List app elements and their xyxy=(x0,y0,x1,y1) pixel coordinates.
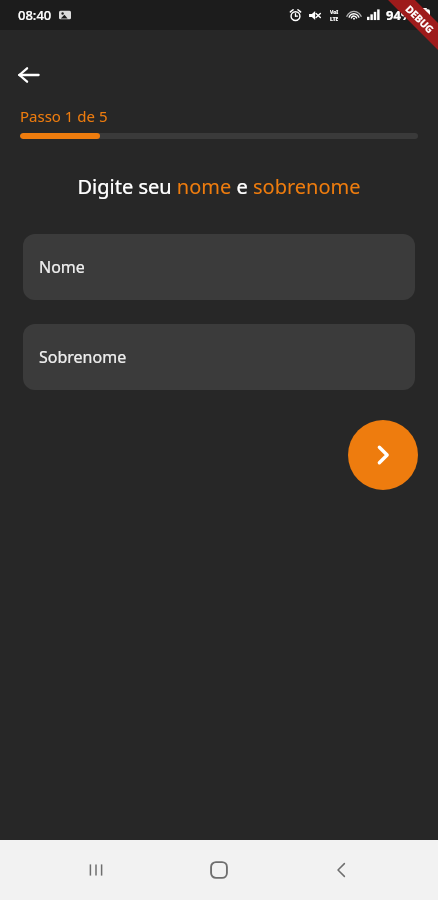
button[interactable]: Sobrenome xyxy=(23,324,415,390)
staticText: Sobrenome xyxy=(39,346,127,368)
staticText: Passo 1 de 5 xyxy=(20,106,108,126)
button[interactable]: Back xyxy=(6,52,52,98)
staticText: Digite seu nome e sobrenome xyxy=(16,173,422,200)
button[interactable]: Nome xyxy=(23,234,415,300)
staticText: LTE xyxy=(330,16,339,22)
button[interactable]: Home xyxy=(192,843,246,897)
staticText: 94% xyxy=(386,6,413,24)
button[interactable]: Recents xyxy=(69,843,123,897)
staticText: DEBUG xyxy=(403,2,437,36)
button[interactable]: Next xyxy=(348,420,418,490)
staticText: 08:40 xyxy=(18,6,52,24)
staticText: VoI xyxy=(330,9,339,16)
button[interactable]: Back xyxy=(315,843,369,897)
staticText: Nome xyxy=(39,256,85,278)
